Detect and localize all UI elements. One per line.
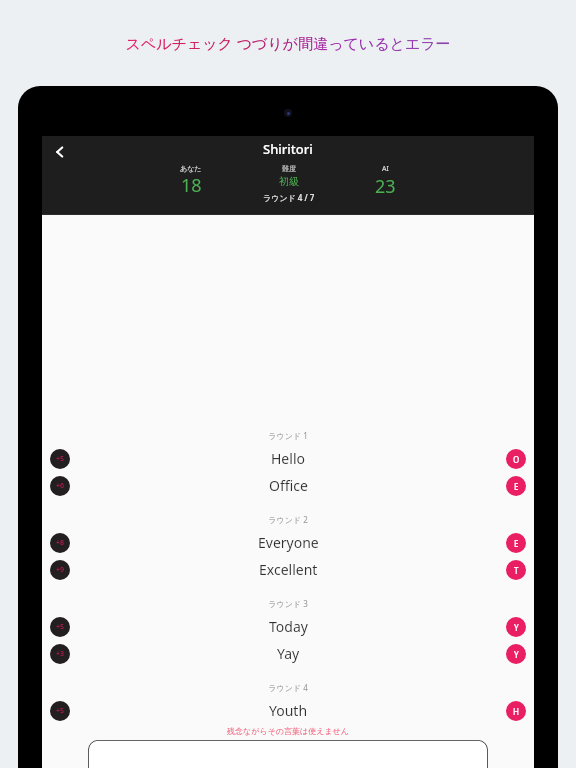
staticText: Everyone [258,533,319,552]
staticText: あなた [180,164,202,173]
staticText: Yay [277,644,300,663]
staticText: スペルチェック つづりが間違っているとエラー [125,33,451,53]
staticText: 18 [181,173,202,198]
staticText: Hello [271,449,305,468]
button[interactable]: +8 [42,529,534,556]
staticText: ラウンド 3 [42,598,534,609]
staticText: E [514,538,519,549]
staticText: 残念ながらその言葉は使えません [42,726,534,736]
staticText: H [513,706,519,717]
staticText: +3 [56,649,65,659]
staticText: Excellent [259,560,318,579]
staticText: +5 [56,706,65,716]
button[interactable]: +5 [42,697,534,724]
staticText: 初級 [279,175,299,188]
button[interactable]: +9 [42,556,534,583]
staticText: Today [269,617,308,636]
staticText: Office [269,476,308,495]
staticText: +6 [56,481,65,491]
staticText: +9 [56,565,65,575]
button[interactable]: +5 [42,613,534,640]
staticText: ラウンド 1 [42,430,534,441]
staticText: +5 [56,454,65,464]
staticText: AI [382,164,389,174]
staticText: Youth [269,701,308,720]
button[interactable]: Back [44,136,76,168]
staticText: Y [514,622,519,633]
staticText: 難度 [282,164,296,173]
staticText: ラウンド 2 [42,514,534,525]
button[interactable]: +6 [42,472,534,499]
staticText: ラウンド 4 [42,682,534,693]
button[interactable] [88,740,488,768]
staticText: +5 [56,622,65,632]
button[interactable]: +5 [42,445,534,472]
staticText: E [514,481,519,492]
staticText: T [514,565,519,576]
staticText: O [513,454,520,465]
button[interactable]: +3 [42,640,534,667]
staticText: Shiritori [263,140,313,158]
staticText: 23 [375,174,396,199]
staticText: +8 [56,538,65,548]
staticText: Y [514,649,519,660]
staticText: ラウンド 4 / 7 [263,192,315,203]
